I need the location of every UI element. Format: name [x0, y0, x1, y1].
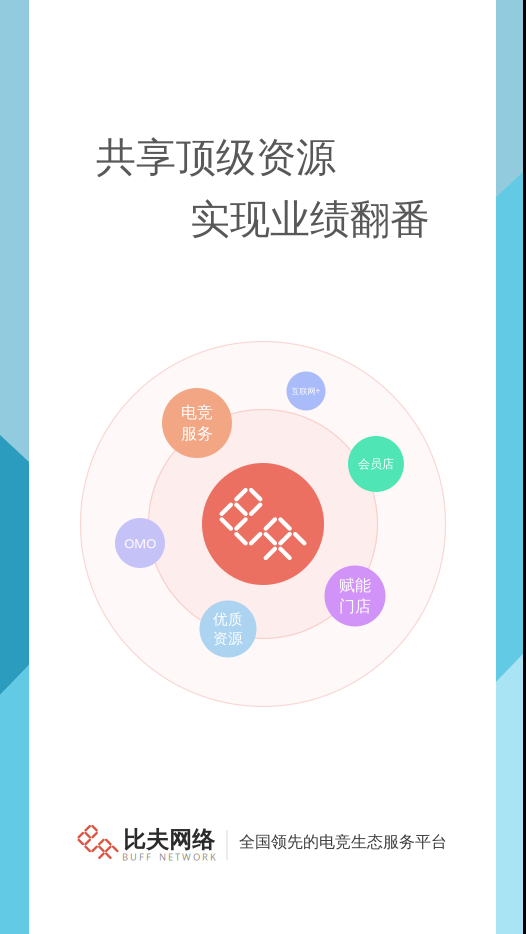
button[interactable]: 赋能 [324, 565, 385, 626]
staticText: OMO [124, 534, 156, 552]
staticText: 实现业绩翻番 [190, 195, 430, 244]
staticText: 比夫网络 [123, 826, 215, 854]
button[interactable]: 优质 [199, 600, 256, 657]
button[interactable]: 电竞 [162, 388, 232, 458]
button[interactable]: OMO [115, 518, 165, 568]
staticText: 门店 [339, 597, 371, 616]
staticText: 电竞 [181, 403, 213, 422]
staticText: 互联网+ [291, 386, 320, 396]
staticText: 全国领先的电竞生态服务平台 [239, 832, 447, 852]
staticText: 优质 [213, 610, 243, 628]
staticText: B U F F N E T W O R K [122, 851, 216, 863]
button[interactable]: 互联网+ [286, 371, 325, 410]
staticText: 会员店 [358, 457, 394, 471]
staticText: 共享顶级资源 [96, 133, 336, 182]
staticText: 资源 [213, 630, 243, 648]
staticText: 服务 [181, 424, 213, 443]
staticText: 赋能 [339, 576, 371, 595]
button[interactable]: 会员店 [348, 436, 404, 492]
